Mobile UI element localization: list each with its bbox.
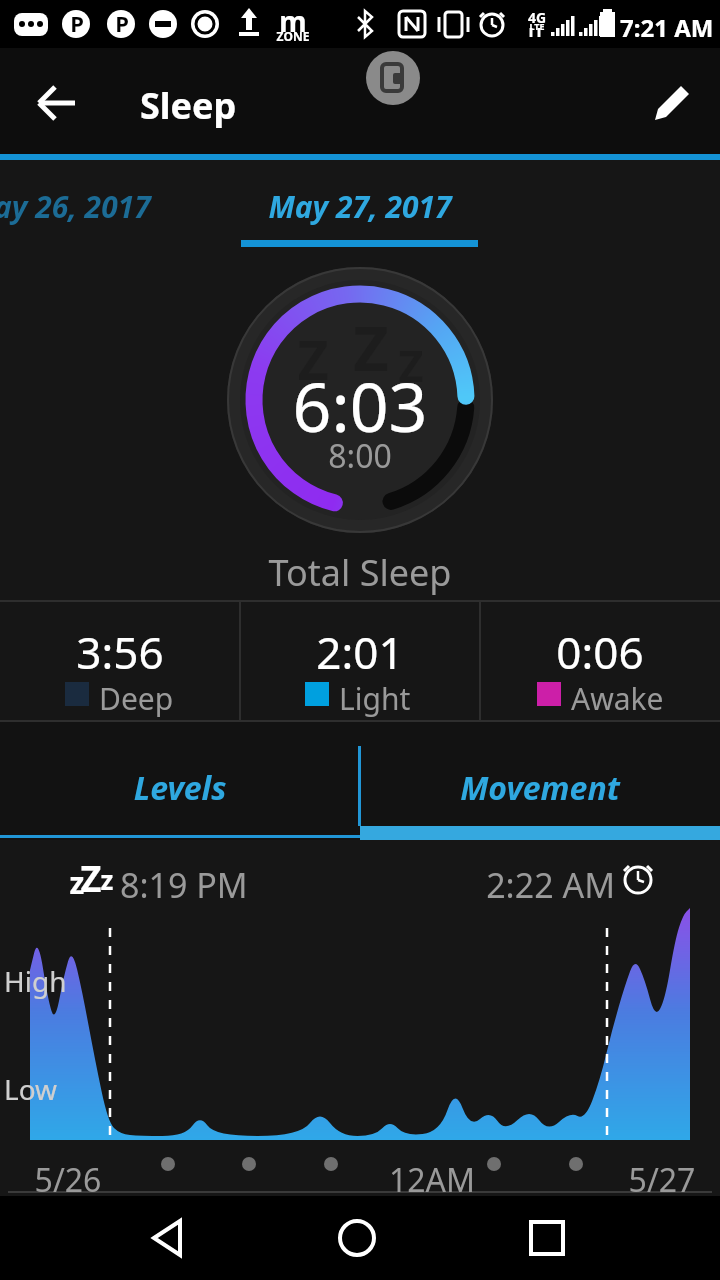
staticText: z	[62, 862, 92, 903]
button[interactable]	[30, 76, 84, 130]
staticText: 8:19 PM	[120, 862, 280, 908]
staticText: Levels	[0, 766, 360, 810]
staticText: Z	[331, 306, 411, 389]
staticText: Deep	[99, 678, 199, 719]
staticText: 7:21 AM	[620, 11, 720, 44]
staticText: z	[92, 862, 122, 897]
staticText: 3:56	[0, 622, 240, 682]
button[interactable]: Movement	[360, 722, 720, 840]
staticText: Sleep	[140, 81, 300, 130]
staticText: 12AM	[387, 1158, 477, 1202]
staticText: 5/26	[28, 1158, 108, 1202]
staticText: Total Sleep	[160, 548, 560, 597]
staticText: Low	[4, 1070, 74, 1108]
staticText: m	[278, 2, 308, 40]
button[interactable]	[327, 1208, 387, 1268]
staticText: May 27, 2017	[200, 186, 520, 227]
button[interactable]: May 27, 2017	[200, 170, 520, 250]
staticText: Light	[339, 678, 439, 719]
staticText: 6:03	[220, 359, 500, 452]
staticText: ay 26, 2017	[0, 186, 214, 227]
button[interactable]: Levels	[0, 722, 360, 840]
staticText: 2:01	[240, 622, 480, 682]
button[interactable]	[645, 76, 699, 130]
staticText: LTE	[526, 20, 548, 32]
staticText: 5/27	[622, 1158, 702, 1202]
staticText: ZONE	[276, 28, 310, 44]
staticText: Awake	[571, 678, 681, 719]
staticText: 2:22 AM	[455, 862, 615, 908]
staticText: Z	[76, 854, 106, 903]
staticText: P	[113, 8, 131, 38]
staticText: High	[4, 962, 74, 1000]
staticText: 0:06	[480, 622, 720, 682]
staticText: 4G	[526, 8, 548, 27]
staticText: Z	[273, 323, 353, 395]
staticText: P	[68, 8, 86, 38]
staticText: 8:00	[220, 434, 500, 478]
staticText: Z	[376, 336, 446, 395]
button[interactable]	[140, 1208, 200, 1268]
staticText: Movement	[360, 766, 720, 810]
button[interactable]	[517, 1208, 577, 1268]
